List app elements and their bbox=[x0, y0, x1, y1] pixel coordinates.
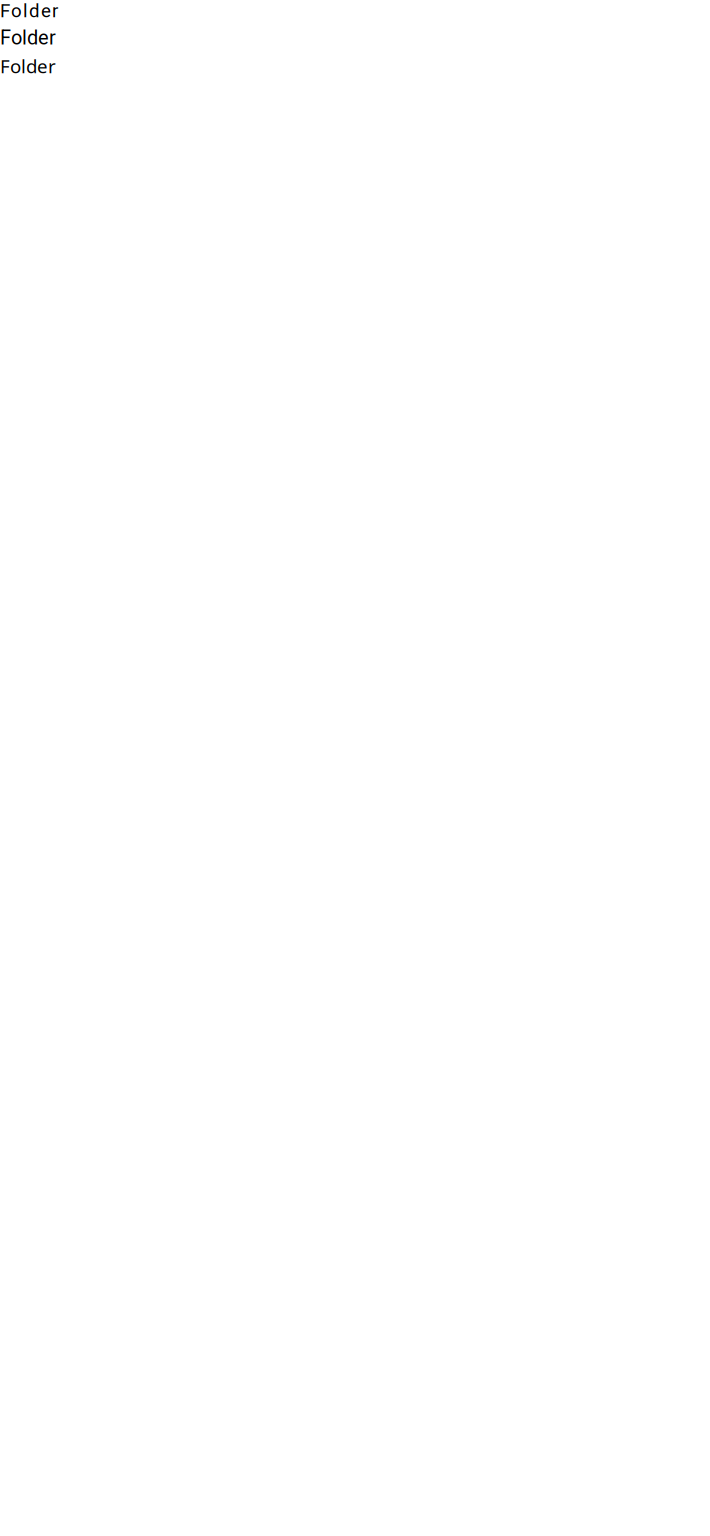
staticText: Folder bbox=[0, 0, 58, 22]
staticText: Folder bbox=[0, 53, 56, 79]
staticText: Folder bbox=[0, 26, 56, 49]
